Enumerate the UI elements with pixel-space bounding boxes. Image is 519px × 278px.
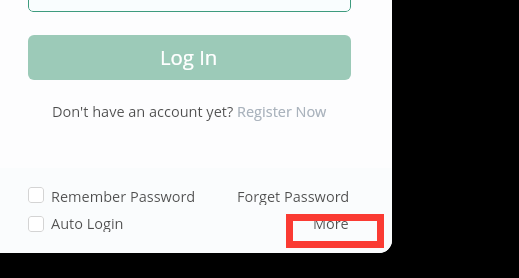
staticText: Auto Login xyxy=(51,214,124,232)
button[interactable]: More xyxy=(286,214,384,248)
staticText: Log In xyxy=(160,43,218,71)
button[interactable]: Register Now xyxy=(237,102,327,122)
button[interactable]: Auto Login xyxy=(28,216,124,234)
staticText: More xyxy=(313,214,349,234)
staticText: Remember Password xyxy=(51,187,196,205)
button[interactable]: Password field xyxy=(28,0,351,12)
button[interactable]: Remember Password xyxy=(28,187,196,205)
staticText: Forget Password xyxy=(237,187,350,205)
staticText: Don't have an account yet? xyxy=(52,102,237,122)
button[interactable]: Log In xyxy=(28,35,351,80)
button[interactable]: Forget Password xyxy=(237,187,350,205)
